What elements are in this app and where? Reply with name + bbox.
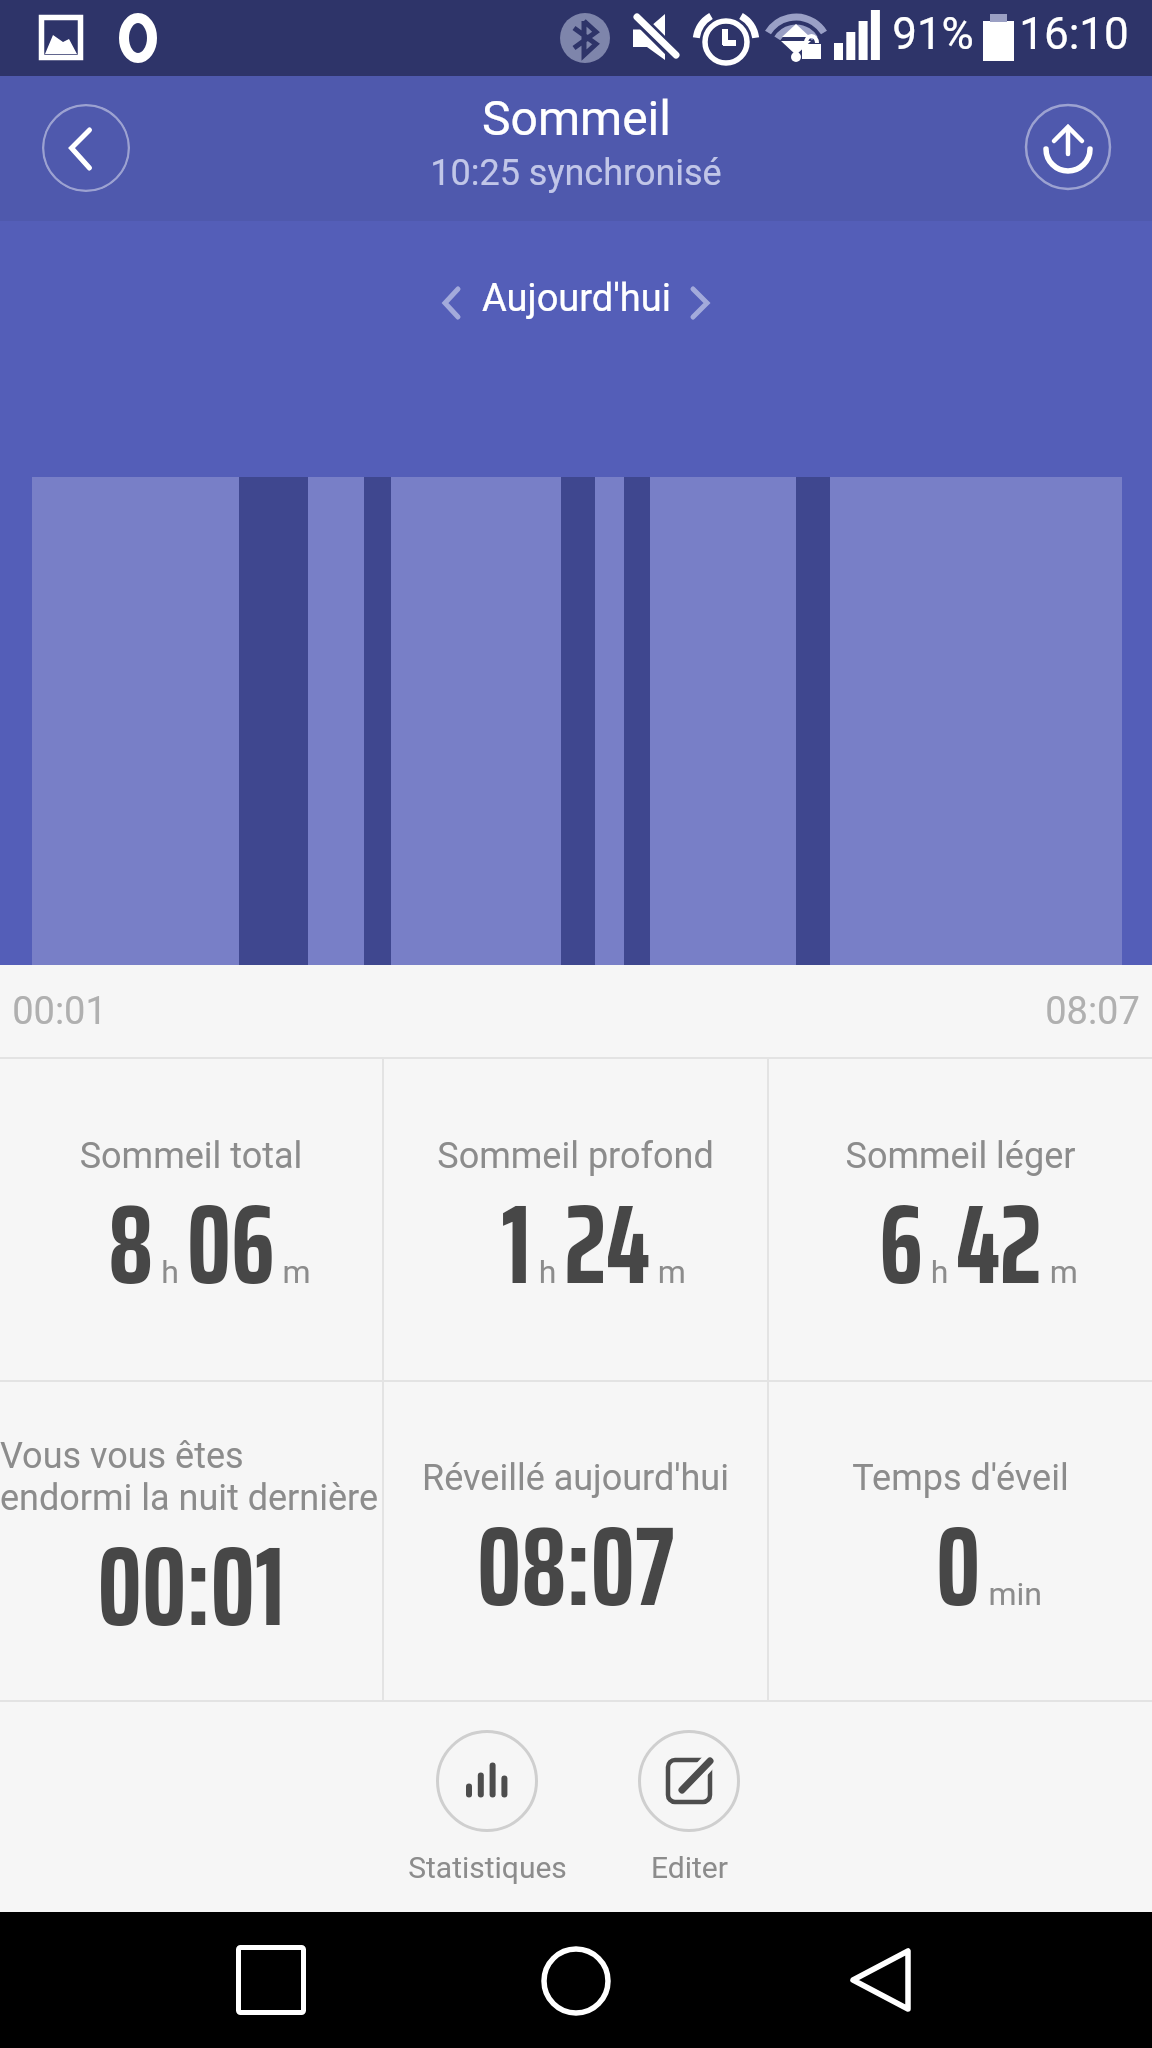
staticText: Vous vous êtes endormi la nuit dernière — [0, 1435, 382, 1519]
staticText: 8 h 06 m — [108, 1157, 311, 1332]
staticText: Sommeil — [482, 90, 671, 146]
staticText: 00:01 — [97, 1499, 285, 1674]
staticText: Statistiques — [408, 1850, 567, 1885]
staticText: Sommeil total — [0, 1135, 382, 1177]
staticText: Temps d'éveil — [769, 1457, 1152, 1499]
staticText: Réveillé aujourd'hui — [384, 1457, 767, 1499]
button[interactable]: Previous day — [412, 263, 492, 343]
staticText: 16:10 — [1019, 8, 1129, 60]
staticText: 08:07 — [1045, 989, 1140, 1034]
staticText: 10:25 synchronisé — [430, 152, 722, 194]
staticText: 0 min — [936, 1479, 1042, 1654]
staticText: 00:01 — [12, 989, 107, 1034]
button[interactable]: Editer — [549, 1730, 829, 1885]
button[interactable]: Back — [42, 104, 130, 192]
staticText: 1 h 24 m — [501, 1157, 686, 1332]
staticText: 91% — [892, 8, 974, 60]
staticText: Sommeil léger — [769, 1135, 1152, 1177]
staticText: Editer — [651, 1850, 728, 1885]
button[interactable]: Sync — [1024, 103, 1112, 191]
staticText: Aujourd'hui — [482, 276, 671, 321]
staticText: 6 h 42 m — [879, 1157, 1078, 1332]
staticText: 08:07 — [477, 1479, 674, 1654]
staticText: Sommeil profond — [384, 1135, 767, 1177]
button[interactable]: Statistiques — [347, 1730, 627, 1885]
button[interactable]: Next day — [660, 263, 740, 343]
